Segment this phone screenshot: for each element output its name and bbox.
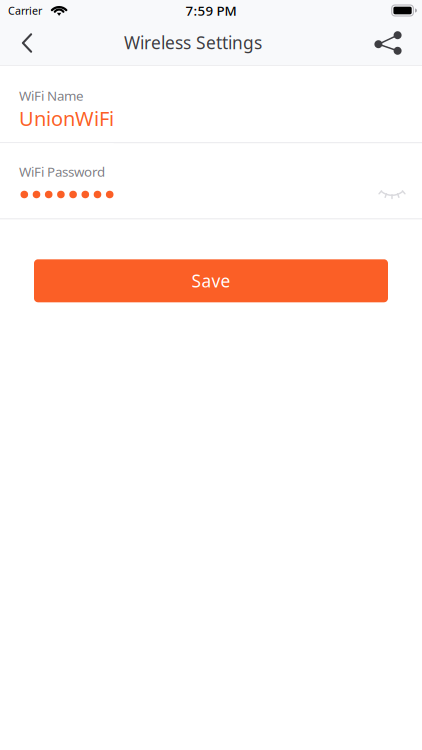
button[interactable]: Show password	[372, 178, 412, 212]
button[interactable]: WiFi Name	[0, 66, 422, 142]
button[interactable]: WiFi Password	[0, 143, 113, 218]
staticText: Carrier	[8, 3, 42, 18]
staticText: WiFi Password	[19, 163, 105, 180]
button[interactable]: Share	[366, 21, 410, 65]
staticText: UnionWiFi	[19, 105, 114, 131]
button[interactable]: Back	[5, 21, 49, 65]
staticText: Save	[191, 269, 230, 292]
staticText: 7:59 PM	[185, 2, 236, 19]
staticText: Wireless Settings	[124, 31, 262, 54]
button[interactable]: Save	[34, 259, 388, 302]
staticText: WiFi Name	[19, 87, 84, 104]
